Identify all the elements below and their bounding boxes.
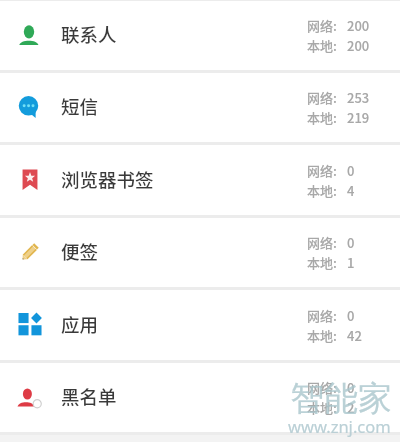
staticText: 本地: xyxy=(307,398,337,417)
staticText: 网络: xyxy=(307,161,337,180)
staticText: 网络: xyxy=(307,233,337,252)
button[interactable]: 短信 xyxy=(0,72,400,141)
staticText: 应用 xyxy=(61,311,99,338)
staticText: 网络: xyxy=(307,16,337,35)
staticText: 1 xyxy=(347,253,355,272)
staticText: 219 xyxy=(347,108,370,127)
staticText: 0 xyxy=(347,306,355,325)
staticText: 本地: xyxy=(307,326,337,345)
button[interactable]: 黑名单 xyxy=(0,362,400,431)
staticText: 网络: xyxy=(307,306,337,325)
staticText: 0 xyxy=(347,161,355,180)
staticText: 0 xyxy=(347,378,355,397)
staticText: 253 xyxy=(347,88,370,107)
staticText: 智能家 xyxy=(290,377,392,420)
staticText: 本地: xyxy=(307,36,337,55)
button[interactable]: 便签 xyxy=(0,217,400,286)
staticText: 200 xyxy=(347,16,370,35)
staticText: 便签 xyxy=(61,238,99,265)
staticText: 本地: xyxy=(307,181,337,200)
staticText: 2 xyxy=(347,398,355,417)
staticText: 黑名单 xyxy=(61,383,117,410)
button[interactable]: 应用 xyxy=(0,290,400,359)
staticText: 短信 xyxy=(61,93,99,120)
staticText: 本地: xyxy=(307,253,337,272)
staticText: 0 xyxy=(347,233,355,252)
button[interactable]: 联系人 xyxy=(0,0,400,69)
staticText: 42 xyxy=(347,326,362,345)
staticText: www.znj.com xyxy=(288,415,391,437)
staticText: 4 xyxy=(347,181,355,200)
staticText: 浏览器书签 xyxy=(61,166,154,193)
button[interactable]: 浏览器书签 xyxy=(0,145,400,214)
staticText: 联系人 xyxy=(61,21,117,48)
staticText: 网络: xyxy=(307,378,337,397)
staticText: 本地: xyxy=(307,108,337,127)
staticText: 200 xyxy=(347,36,370,55)
staticText: 网络: xyxy=(307,88,337,107)
